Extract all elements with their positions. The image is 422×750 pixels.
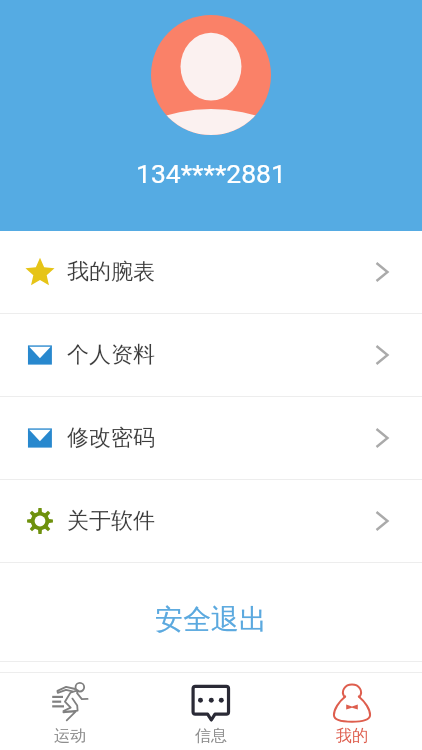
button[interactable]: 安全退出 xyxy=(0,563,422,661)
button[interactable]: 运动 xyxy=(0,673,140,750)
staticText: 我的腕表 xyxy=(67,258,155,286)
staticText: 134****2881 xyxy=(136,158,286,189)
button[interactable]: 信息 xyxy=(140,673,281,750)
button[interactable]: 我的腕表 xyxy=(0,231,422,313)
staticText: 个人资料 xyxy=(67,341,155,369)
button[interactable]: 关于软件 xyxy=(0,480,422,562)
button[interactable]: 我的 xyxy=(281,673,422,750)
button[interactable]: 修改密码 xyxy=(0,397,422,479)
staticText: 安全退出 xyxy=(155,602,267,637)
staticText: 修改密码 xyxy=(67,424,155,452)
staticText: 我的 xyxy=(336,726,368,746)
staticText: 信息 xyxy=(195,726,227,746)
button[interactable]: 个人资料 xyxy=(0,314,422,396)
staticText: 关于软件 xyxy=(67,507,155,535)
staticText: 运动 xyxy=(54,726,86,746)
